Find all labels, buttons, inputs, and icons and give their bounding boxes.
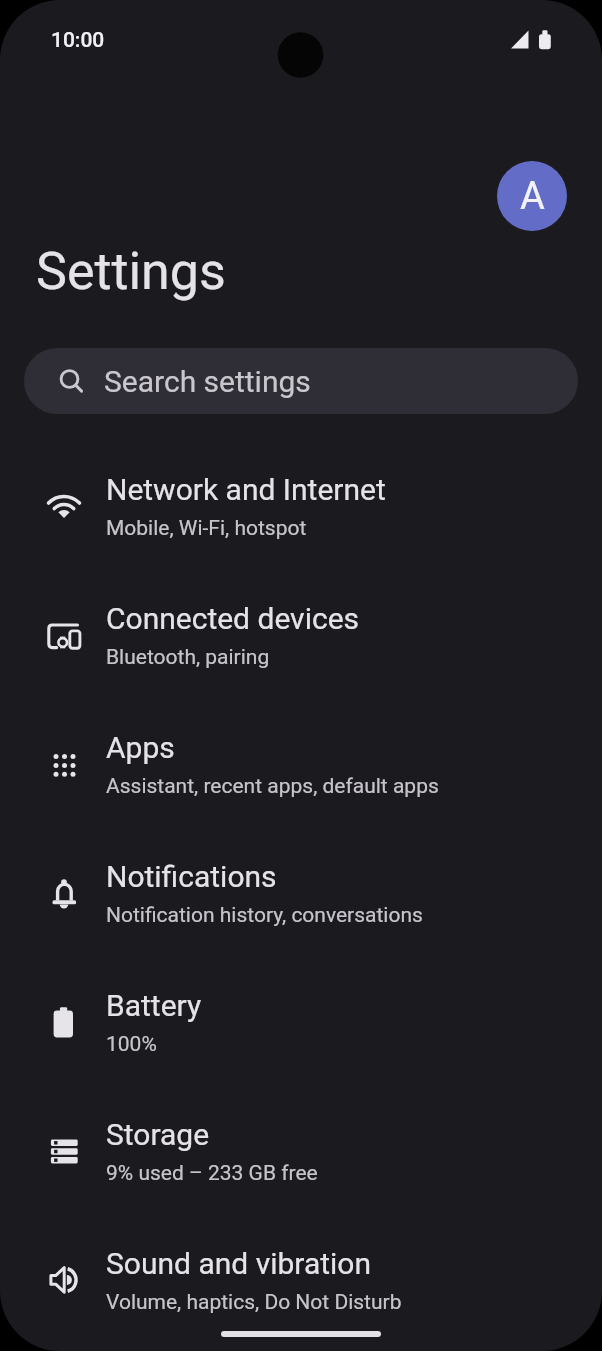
staticText: Mobile, Wi-Fi, hotspot: [106, 516, 307, 541]
staticText: Network and Internet: [106, 472, 386, 507]
button[interactable]: Connected devices: [0, 571, 602, 700]
staticText: Bluetooth, pairing: [106, 645, 270, 670]
button[interactable]: Sound and vibration: [0, 1216, 602, 1345]
button[interactable]: Search settings: [24, 348, 578, 414]
staticText: Sound and vibration: [106, 1246, 371, 1281]
staticText: Notifications: [106, 859, 277, 894]
staticText: Storage: [106, 1117, 210, 1152]
button[interactable]: Battery: [0, 958, 602, 1087]
button[interactable]: A: [497, 161, 567, 231]
staticText: Assistant, recent apps, default apps: [106, 774, 439, 799]
button[interactable]: Storage: [0, 1087, 602, 1216]
staticText: Settings: [36, 241, 226, 302]
staticText: Volume, haptics, Do Not Disturb: [106, 1290, 402, 1315]
staticText: Search settings: [104, 364, 311, 399]
button[interactable]: Network and Internet: [0, 442, 602, 571]
staticText: 9% used – 233 GB free: [106, 1161, 318, 1186]
button[interactable]: Notifications: [0, 829, 602, 958]
staticText: Connected devices: [106, 601, 360, 636]
staticText: 100%: [106, 1032, 157, 1057]
staticText: Apps: [106, 730, 175, 765]
staticText: Notification history, conversations: [106, 903, 423, 928]
staticText: A: [520, 174, 545, 219]
button[interactable]: Apps: [0, 700, 602, 829]
staticText: 10:00: [51, 28, 105, 53]
staticText: Battery: [106, 988, 202, 1023]
